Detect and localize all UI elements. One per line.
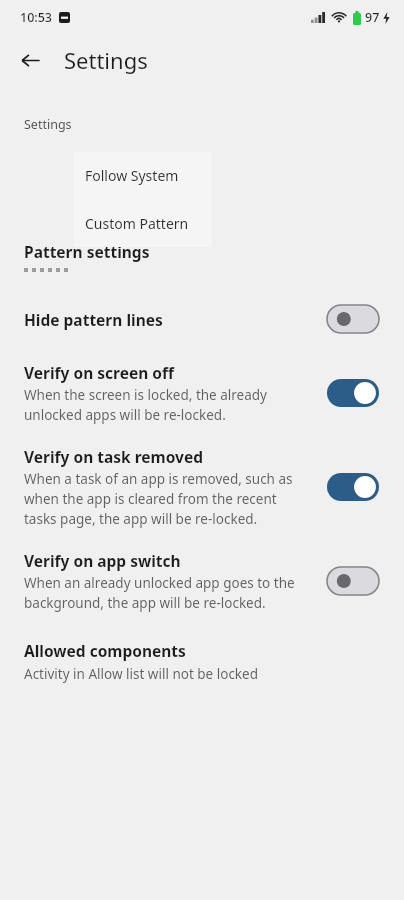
staticText: Follow System — [85, 166, 179, 185]
staticText: Custom Pattern — [85, 214, 189, 233]
button[interactable]: Hide pattern lines — [24, 304, 380, 334]
button[interactable]: Off — [326, 304, 380, 334]
staticText: Allowed components — [24, 640, 186, 661]
staticText: 97 — [365, 9, 380, 26]
button[interactable]: Allowed components — [24, 640, 380, 683]
staticText: Verify on app switch — [24, 550, 181, 571]
button[interactable]: Verify on screen off — [24, 362, 380, 424]
button[interactable]: Verify on task removed — [24, 446, 380, 528]
button[interactable]: Verify on app switch — [24, 550, 380, 612]
staticText: Pattern settings — [24, 241, 150, 262]
button[interactable]: Back — [10, 40, 50, 80]
staticText: Verify on screen off — [24, 362, 174, 383]
staticText: Verify on task removed — [24, 446, 203, 467]
staticText: 10:53 — [20, 9, 53, 26]
staticText: When an already unlocked app goes to the… — [24, 574, 312, 612]
staticText: When the screen is locked, the already u… — [24, 386, 312, 424]
button[interactable]: Custom Pattern — [74, 199, 212, 247]
staticText: Hide pattern lines — [24, 309, 163, 330]
staticText: Settings — [64, 45, 148, 75]
button[interactable]: Pattern settings — [24, 241, 380, 272]
button[interactable]: Off — [326, 566, 380, 596]
staticText: When a task of an app is removed, such a… — [24, 470, 312, 528]
staticText: Activity in Allow list will not be locke… — [24, 665, 258, 683]
staticText: Settings — [24, 116, 72, 133]
button[interactable]: On — [326, 378, 380, 408]
button[interactable]: Follow System — [74, 152, 212, 199]
button[interactable]: On — [326, 472, 380, 502]
